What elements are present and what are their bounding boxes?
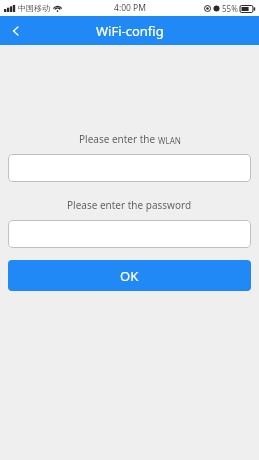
button[interactable]: Text input field: [8, 154, 251, 182]
staticText: Please enter the password: [67, 198, 192, 212]
button[interactable]: OK: [8, 260, 251, 291]
staticText: 55%: [222, 3, 238, 14]
staticText: Please enter the: [79, 132, 158, 146]
button[interactable]: Back: [0, 16, 32, 45]
staticText: WLAN: [158, 135, 181, 146]
staticText: OK: [120, 267, 139, 285]
staticText: 中国移动: [18, 3, 50, 13]
button[interactable]: Text input field: [8, 220, 251, 248]
staticText: 4:00 PM: [114, 2, 146, 14]
staticText: WiFi-config: [96, 22, 164, 40]
